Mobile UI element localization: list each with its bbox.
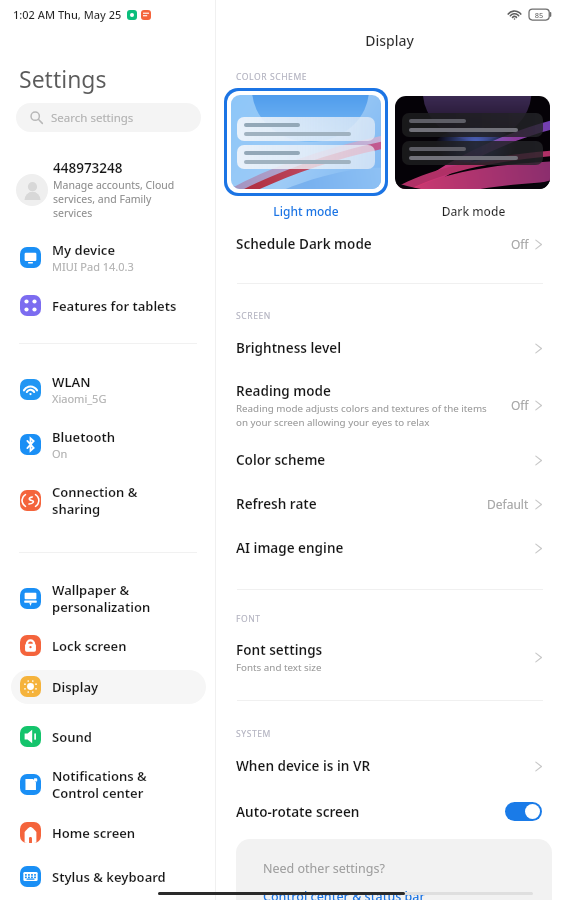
staticText: Refresh rate	[236, 495, 317, 513]
staticText: Display	[365, 31, 414, 50]
staticText: Xiaomi_5G	[52, 391, 107, 406]
staticText: Color scheme	[236, 451, 326, 469]
button[interactable]: Home screen	[11, 816, 206, 850]
staticText: AI image engine	[236, 539, 344, 557]
staticText: Control center & status bar	[263, 888, 425, 900]
button[interactable]: WLAN	[11, 373, 206, 407]
button[interactable]: When device is in VR	[216, 753, 563, 779]
button[interactable]: AI image engine	[216, 535, 563, 561]
button[interactable]: Features for tablets	[11, 289, 206, 323]
button[interactable]: Dark mode	[395, 96, 550, 189]
staticText: Lock screen	[52, 637, 127, 655]
staticText: Reading mode adjusts colors and textures…	[236, 402, 487, 428]
staticText: Connection & sharing	[52, 484, 138, 518]
staticText: Search settings	[51, 110, 134, 126]
button[interactable]: Auto-rotate screen toggle, on	[505, 802, 542, 821]
button[interactable]: Notifications & Control center	[11, 768, 206, 802]
button[interactable]: Refresh rate	[216, 491, 563, 517]
staticText: Display	[52, 678, 99, 696]
staticText: Settings	[19, 63, 107, 94]
staticText: 448973248	[53, 159, 123, 177]
button[interactable]: Stylus & keyboard	[11, 860, 206, 894]
button[interactable]: Light mode	[231, 95, 381, 189]
staticText: When device is in VR	[236, 757, 371, 775]
staticText: SCREEN	[236, 310, 271, 322]
button[interactable]: Sound	[11, 720, 206, 754]
staticText: Features for tablets	[52, 297, 177, 315]
staticText: Wallpaper & personalization	[52, 582, 151, 616]
staticText: FONT	[236, 613, 261, 625]
staticText: Sound	[52, 728, 92, 746]
staticText: Manage accounts, Cloud services, and Fam…	[53, 178, 175, 220]
staticText: Default	[487, 496, 529, 512]
staticText: Brightness level	[236, 339, 342, 357]
staticText: On	[52, 446, 68, 461]
staticText: Off	[511, 397, 529, 413]
button[interactable]: Need other settings?	[236, 839, 552, 900]
button[interactable]: Reading mode	[216, 378, 563, 432]
staticText: Need other settings?	[263, 860, 385, 877]
staticText: Off	[511, 236, 529, 252]
button[interactable]: Lock screen	[11, 629, 206, 663]
button[interactable]: Color scheme	[216, 447, 563, 473]
staticText: 1:02 AM Thu, May 25	[13, 7, 122, 22]
staticText: Notifications & Control center	[52, 768, 147, 802]
staticText: Font settings	[236, 641, 323, 659]
staticText: SYSTEM	[236, 728, 271, 740]
button[interactable]: Auto-rotate screen	[216, 798, 563, 825]
staticText: My device	[52, 241, 115, 259]
staticText: MIUI Pad 14.0.3	[52, 259, 134, 274]
button[interactable]: Display	[11, 670, 206, 704]
staticText: Fonts and text size	[236, 661, 322, 674]
button[interactable]: My device	[11, 241, 206, 275]
staticText: Auto-rotate screen	[236, 803, 505, 821]
button[interactable]: Font settings	[216, 637, 563, 678]
staticText: 85	[529, 10, 549, 20]
button[interactable]: Brightness level	[216, 335, 563, 361]
button[interactable]: Bluetooth	[11, 428, 206, 462]
staticText: Bluetooth	[52, 428, 116, 446]
staticText: Stylus & keyboard	[52, 868, 166, 886]
button[interactable]: Wallpaper & personalization	[11, 582, 206, 616]
staticText: Light mode	[224, 203, 388, 219]
staticText: Dark mode	[395, 203, 552, 219]
button[interactable]: Connection & sharing	[11, 484, 206, 518]
staticText: Schedule Dark mode	[236, 235, 372, 253]
button[interactable]: 448973248	[16, 159, 206, 220]
button[interactable]: Search settings	[16, 103, 201, 132]
staticText: Home screen	[52, 824, 136, 842]
staticText: WLAN	[52, 373, 91, 391]
staticText: Reading mode	[236, 382, 331, 400]
button[interactable]: Schedule Dark mode	[216, 231, 563, 257]
staticText: COLOR SCHEME	[236, 71, 308, 83]
